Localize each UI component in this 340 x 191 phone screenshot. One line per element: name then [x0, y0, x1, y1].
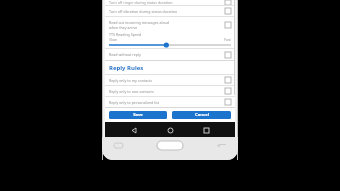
button[interactable]: Home [163, 123, 177, 137]
staticText: Cancel [195, 112, 209, 118]
button[interactable]: Reply only to personalized list [105, 97, 235, 107]
staticText: Fast [224, 37, 231, 42]
staticText: Turn off ringer during status duration [109, 0, 173, 5]
button[interactable]: Reply only to non-contacts [105, 86, 235, 96]
button[interactable]: Toggle option [225, 0, 231, 5]
staticText: Slow [109, 37, 117, 42]
button[interactable]: Back key [217, 143, 226, 148]
staticText: Reply only to my contacts [109, 78, 152, 83]
button[interactable]: Toggle option [225, 22, 231, 28]
staticText: Reply only to non-contacts [109, 89, 154, 94]
button[interactable]: Toggle option [225, 52, 231, 58]
button[interactable]: Turn off ringer during status duration [105, 0, 235, 5]
button[interactable]: Recent apps [199, 123, 213, 137]
staticText: Reply Rules [109, 64, 144, 72]
button[interactable]: Recent apps key [114, 143, 123, 148]
button[interactable]: Home button [157, 141, 183, 150]
button[interactable]: Toggle option [225, 88, 231, 94]
button[interactable]: Save [109, 111, 167, 119]
button[interactable]: Toggle option [225, 8, 231, 14]
staticText: when they arrive [109, 25, 138, 30]
staticText: TTS Reading Speed [109, 32, 142, 37]
button[interactable]: Read without reply [105, 49, 235, 60]
staticText: Turn off vibration during status duratio… [109, 9, 178, 14]
staticText: Read out incoming messages aloud [109, 20, 170, 25]
button[interactable]: Read out incoming messages aloud [105, 17, 235, 32]
button[interactable]: Toggle option [225, 99, 231, 105]
button[interactable]: TTS reading speed slider [109, 42, 231, 48]
button[interactable]: Reply only to my contacts [105, 75, 235, 85]
staticText: Save [133, 112, 143, 118]
staticText: Read without reply [109, 52, 141, 57]
button[interactable]: Cancel [172, 111, 231, 119]
button[interactable]: Toggle option [225, 77, 231, 83]
button[interactable]: Turn off vibration during status duratio… [105, 6, 235, 16]
staticText: Reply only to personalized list [109, 100, 160, 105]
button[interactable]: Back [127, 123, 141, 137]
